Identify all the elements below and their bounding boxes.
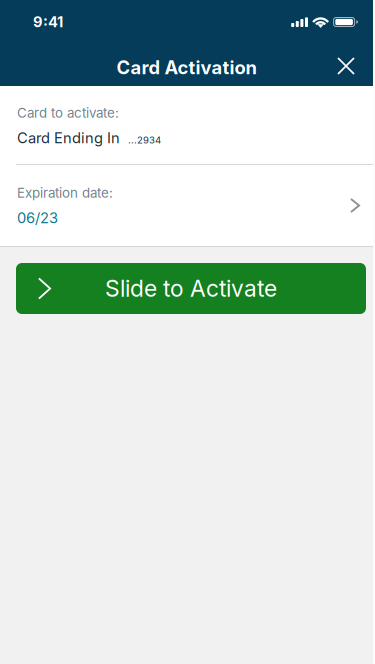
button[interactable]: Close	[324, 44, 368, 86]
staticText: Card Ending In	[17, 129, 120, 147]
staticText: 9:41	[33, 13, 63, 31]
staticText: Card Activation	[116, 56, 256, 79]
staticText: Expiration date:	[17, 185, 113, 201]
staticText: Slide to Activate	[105, 275, 277, 302]
button[interactable]: Slide to Activate	[16, 263, 366, 314]
staticText: 06/23	[17, 209, 58, 227]
staticText: ...2934	[128, 134, 161, 146]
staticText: Card to activate:	[17, 105, 119, 121]
button[interactable]: Expiration date:	[0, 165, 373, 246]
